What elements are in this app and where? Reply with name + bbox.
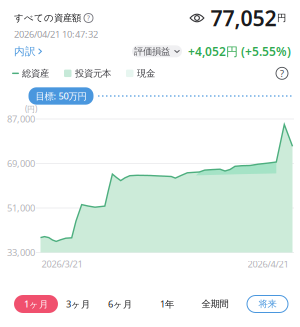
button[interactable]: 1ヶ月: [14, 295, 58, 313]
staticText: 51,000: [7, 202, 35, 214]
staticText: +4,052円 (+5.55%): [188, 43, 291, 59]
staticText: 77,052: [210, 4, 276, 32]
button[interactable]: 6ヶ月: [103, 295, 137, 313]
staticText: 評価損益: [134, 46, 170, 57]
staticText: ?: [280, 67, 284, 79]
button[interactable]: 3ヶ月: [61, 295, 95, 313]
staticText: 87,000: [7, 113, 35, 125]
button[interactable]: グラフの説明: [276, 67, 288, 79]
button[interactable]: 金額の表示を切り替え: [189, 12, 210, 23]
staticText: 33,000: [7, 246, 35, 259]
staticText: 目標: 50万円: [35, 90, 86, 102]
button[interactable]: 1年: [153, 295, 181, 313]
staticText: 69,000: [7, 157, 35, 170]
staticText: 6ヶ月: [108, 298, 132, 310]
button[interactable]: 内訳: [14, 45, 42, 58]
staticText: 内訳: [14, 45, 36, 58]
button[interactable]: 評価損益: [132, 45, 182, 57]
staticText: 総資産: [22, 68, 49, 79]
staticText: ?: [87, 14, 90, 22]
staticText: 将来: [258, 298, 276, 310]
button[interactable]: 将来: [247, 295, 288, 312]
staticText: 2026/04/21 10:47:32: [14, 28, 98, 40]
button[interactable]: 全期間: [198, 295, 232, 313]
staticText: 全期間: [201, 298, 228, 310]
staticText: (円): [25, 104, 37, 114]
staticText: 現金: [137, 68, 155, 79]
button[interactable]: 資産額の説明: [81, 13, 93, 22]
staticText: 1ヶ月: [24, 298, 48, 310]
staticText: 2026/4/21: [247, 258, 288, 270]
staticText: 1年: [160, 298, 174, 310]
staticText: 2026/3/21: [41, 258, 82, 270]
staticText: すべての資産額: [14, 12, 81, 24]
staticText: 円: [277, 12, 286, 24]
staticText: 3ヶ月: [66, 298, 90, 310]
staticText: 投資元本: [75, 68, 111, 79]
